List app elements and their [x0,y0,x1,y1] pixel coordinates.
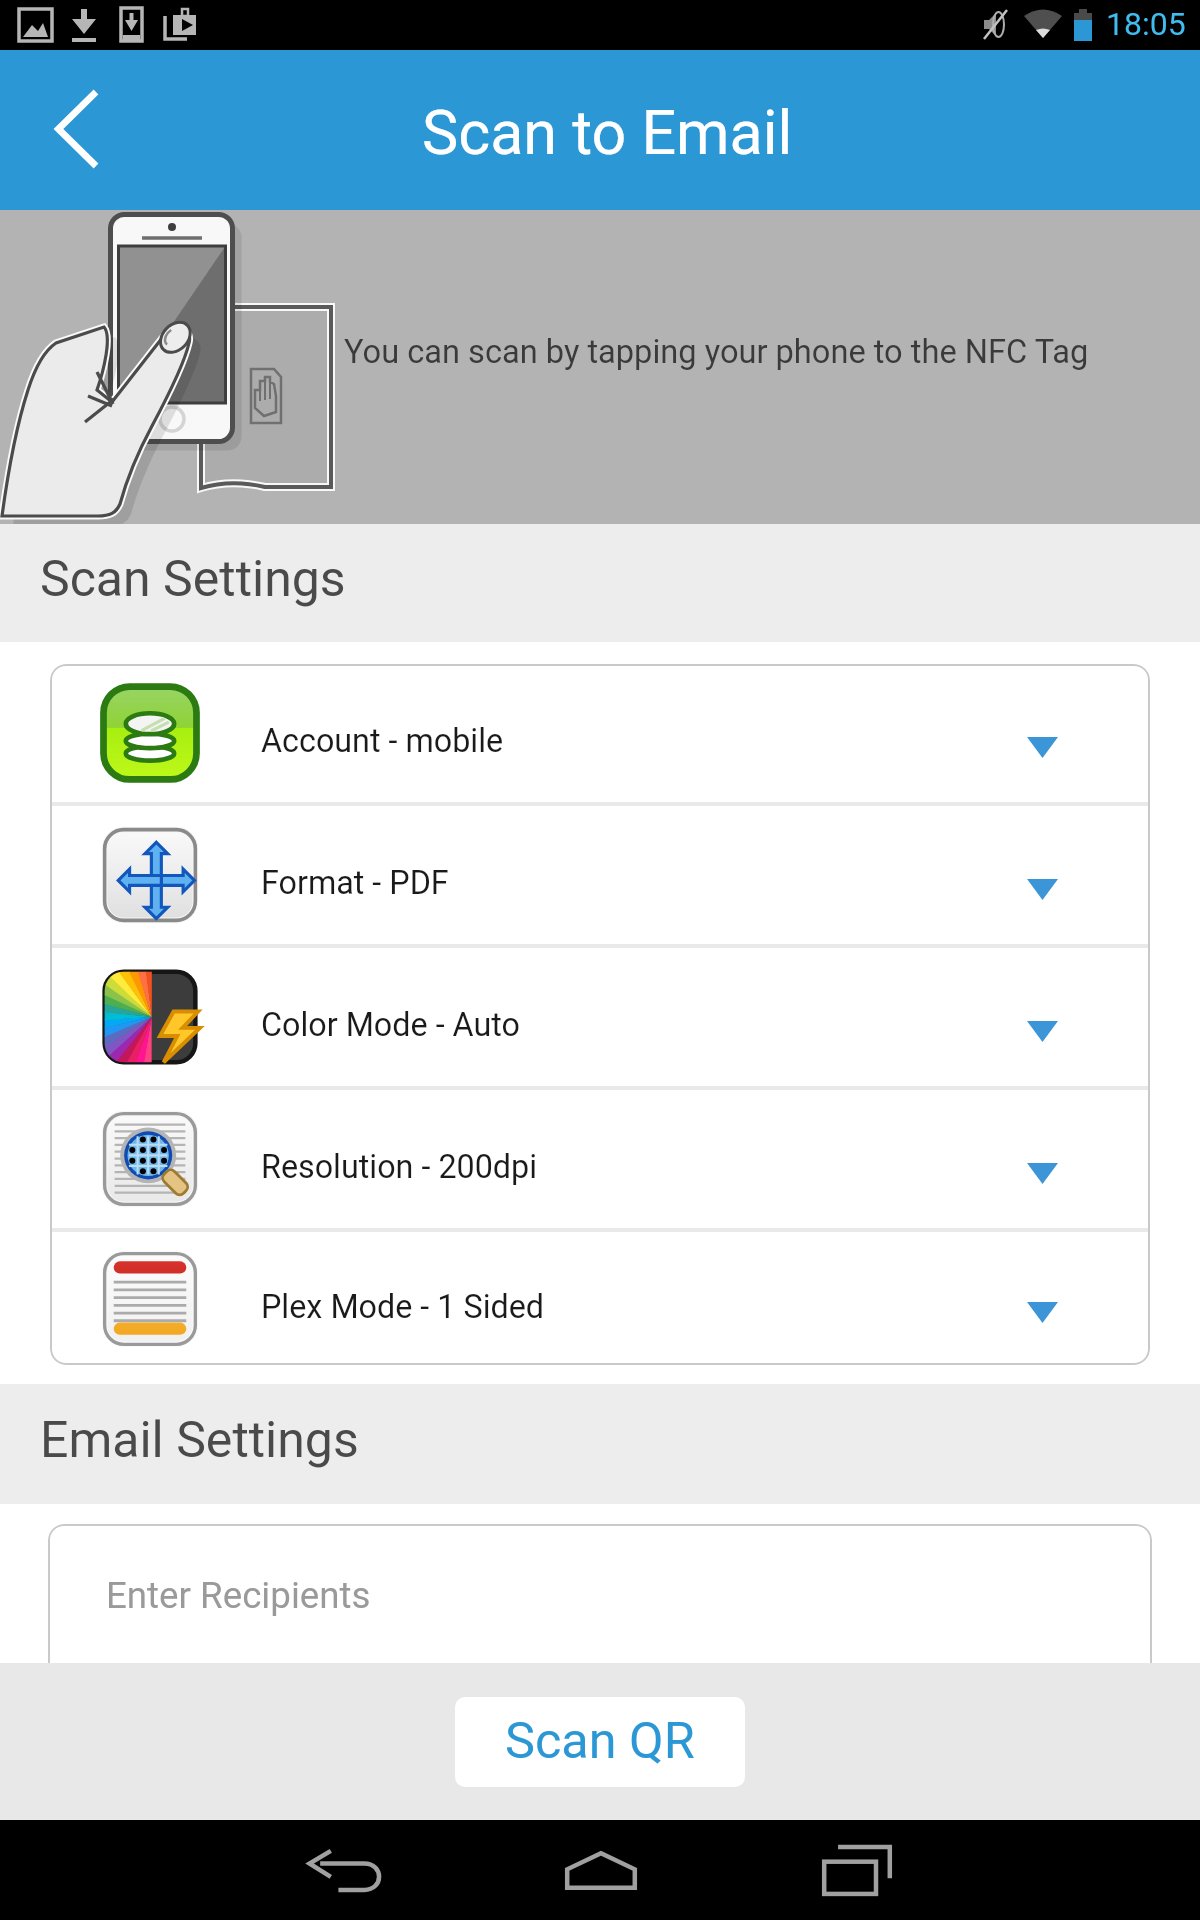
staticText: Resolution - 200dpi [261,1148,538,1186]
staticText: Plex Mode - 1 Sided [261,1288,545,1326]
staticText: 18:05 [1106,5,1186,43]
staticText: Color Mode - Auto [261,1006,520,1044]
button[interactable]: Color Mode - Auto [50,948,1150,1086]
staticText: You can scan by tapping your phone to th… [344,333,1089,371]
button[interactable]: Home [521,1820,681,1920]
staticText: Scan Settings [40,550,346,609]
button[interactable]: Recents [777,1820,937,1920]
button[interactable]: Resolution - 200dpi [50,1090,1150,1228]
staticText: Scan to Email [422,97,793,168]
button[interactable]: Plex Mode - 1 Sided [50,1232,1150,1365]
staticText: Scan QR [505,1711,695,1770]
button[interactable]: Back [0,50,150,210]
button[interactable]: Account - mobile [50,664,1150,802]
staticText: Account - mobile [261,722,504,760]
staticText: Enter Recipients [106,1574,371,1617]
button[interactable]: Enter Recipients [48,1524,1152,1754]
staticText: Email Settings [40,1411,359,1470]
staticText: Format - PDF [261,864,449,902]
button[interactable]: Format - PDF [50,806,1150,944]
button[interactable]: Back [266,1820,426,1920]
button[interactable]: Scan QR [455,1697,745,1787]
